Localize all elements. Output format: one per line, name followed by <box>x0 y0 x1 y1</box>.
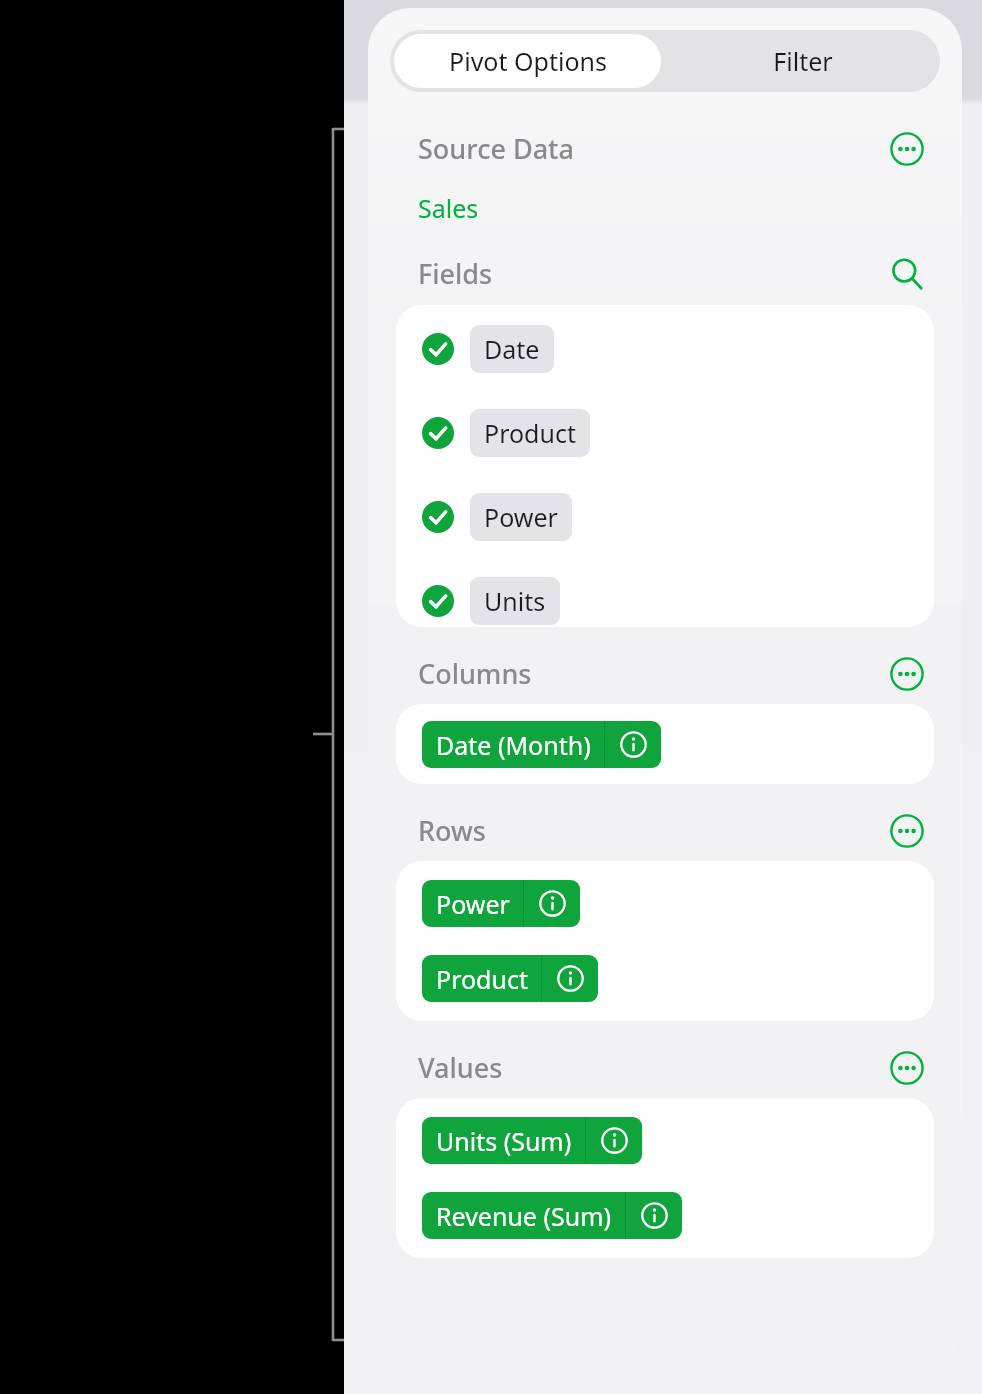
button[interactable]: Pivot Options <box>394 34 661 88</box>
button[interactable]: Power <box>422 880 580 927</box>
button[interactable]: Revenue (Sum) <box>422 1192 682 1239</box>
other: Info about Date (Month) <box>605 721 661 768</box>
staticText: Date <box>484 332 540 366</box>
staticText: Units (Sum) <box>436 1124 572 1158</box>
staticText: Revenue (Sum) <box>436 1199 612 1233</box>
staticText: Source Data <box>418 130 574 167</box>
other: Info about Product <box>542 955 598 1002</box>
button[interactable]: Units <box>396 577 934 625</box>
staticText: Pivot Options <box>449 44 607 78</box>
button[interactable]: Product <box>396 409 934 457</box>
staticText: Filter <box>773 44 833 78</box>
other: Info about Units (Sum) <box>586 1117 642 1164</box>
staticText: Fields <box>418 255 493 292</box>
button[interactable]: Date <box>396 325 934 373</box>
button[interactable]: More options <box>890 132 924 166</box>
button[interactable]: Filter <box>665 30 940 92</box>
button[interactable]: Sales <box>418 191 479 225</box>
other: Info about Power <box>524 880 580 927</box>
staticText: Product <box>484 416 576 450</box>
staticText: Values <box>418 1049 503 1086</box>
staticText: Power <box>436 887 510 921</box>
button[interactable]: More options <box>890 657 924 691</box>
staticText: Columns <box>418 655 532 692</box>
button[interactable]: More options <box>890 814 924 848</box>
staticText: Rows <box>418 812 486 849</box>
staticText: Power <box>484 500 558 534</box>
button[interactable]: Product <box>422 955 598 1002</box>
staticText: Date (Month) <box>436 728 591 762</box>
button[interactable]: Search fields <box>890 257 924 291</box>
button[interactable]: Power <box>396 493 934 541</box>
button[interactable]: Units (Sum) <box>422 1117 642 1164</box>
staticText: Units <box>484 584 546 618</box>
button[interactable]: More options <box>890 1051 924 1085</box>
other: Info about Revenue (Sum) <box>626 1192 682 1239</box>
button[interactable]: Date (Month) <box>422 721 661 768</box>
staticText: Product <box>436 962 528 996</box>
